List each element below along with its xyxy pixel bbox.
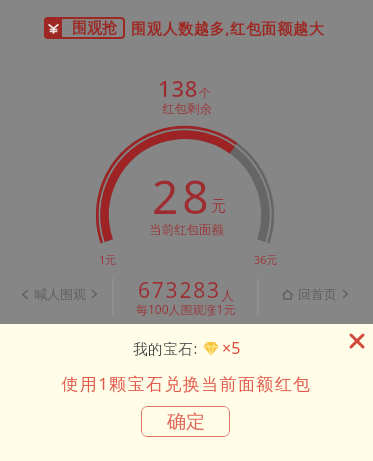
staticText: 喊人围观: [34, 286, 86, 302]
staticText: 138: [158, 73, 199, 103]
staticText: 人: [221, 287, 234, 303]
staticText: 围观人数越多,红包面额越大: [131, 18, 325, 38]
staticText: ×5: [222, 337, 241, 359]
staticText: 确定: [167, 410, 205, 434]
staticText: 使用1颗宝石兑换当前面额红包: [0, 372, 373, 395]
staticText: 673283: [138, 276, 221, 305]
staticText: 当前红包面额: [149, 222, 224, 238]
staticText: 围观抢: [72, 19, 117, 38]
staticText: 红包剩余: [162, 101, 212, 117]
staticText: 36元: [254, 252, 278, 267]
staticText: 1元: [99, 252, 117, 267]
button[interactable]: 回首页: [258, 275, 373, 313]
staticText: 每100人围观涨1元: [136, 301, 236, 317]
button[interactable]: 确定: [141, 406, 230, 437]
button[interactable]: 喊人围观: [3, 275, 116, 313]
button[interactable]: Close: [345, 329, 369, 353]
staticText: 我的宝石:: [133, 338, 198, 358]
staticText: 28: [152, 165, 213, 228]
staticText: 回首页: [298, 286, 337, 302]
staticText: 个: [199, 85, 211, 100]
staticText: 元: [211, 197, 226, 216]
